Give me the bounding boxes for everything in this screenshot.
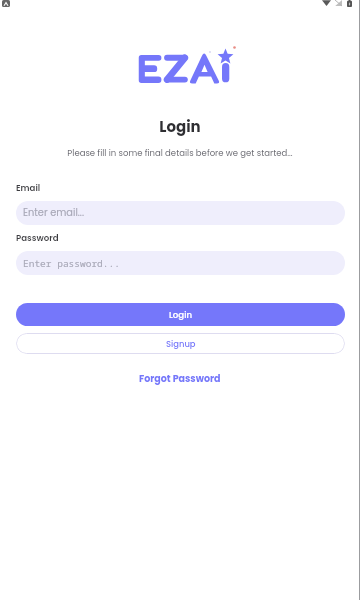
button[interactable]: Forgot Password	[133, 369, 227, 388]
staticText: Login	[0, 116, 360, 137]
button[interactable]: Enter password...	[16, 251, 345, 275]
button[interactable]: Signup	[16, 333, 345, 354]
staticText: Enter password...	[23, 257, 120, 270]
other: EZAi logo	[130, 44, 238, 88]
staticText: Please fill in some final details before…	[0, 147, 360, 159]
staticText: Forgot Password	[139, 372, 221, 385]
button[interactable]: Login	[16, 303, 345, 326]
staticText: Email	[16, 182, 41, 194]
staticText: Login	[169, 309, 192, 321]
button[interactable]: Enter email...	[16, 201, 345, 225]
staticText: Enter email...	[23, 206, 84, 220]
other: App notification	[2, 0, 10, 7]
staticText: Password	[16, 232, 59, 244]
staticText: Signup	[166, 338, 196, 350]
